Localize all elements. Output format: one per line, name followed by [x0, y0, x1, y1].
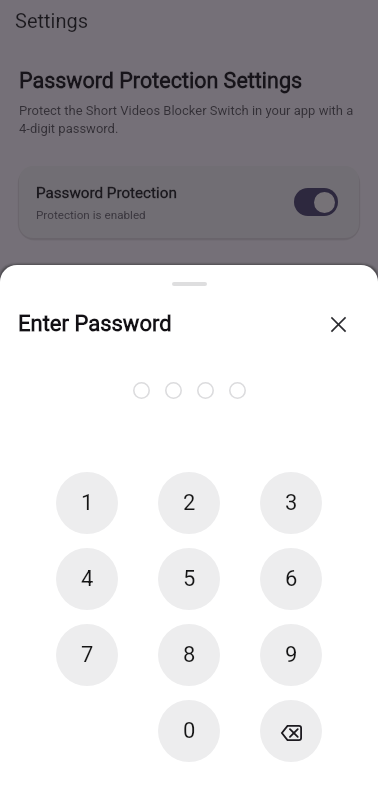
button[interactable]: 0: [158, 700, 220, 762]
staticText: 3: [285, 490, 298, 516]
button[interactable]: 4: [56, 548, 118, 610]
button[interactable]: 2: [158, 472, 220, 534]
staticText: Protect the Short Videos Blocker Switch …: [19, 103, 360, 136]
button[interactable]: Password Protection: [19, 166, 359, 238]
button[interactable]: 8: [158, 624, 220, 686]
staticText: 5: [183, 566, 196, 592]
button[interactable]: Password protection toggle: [294, 188, 338, 216]
staticText: 8: [183, 642, 196, 668]
button[interactable]: 6: [260, 548, 322, 610]
staticText: Enter Password: [18, 311, 325, 337]
button[interactable]: 3: [260, 472, 322, 534]
staticText: 0: [183, 718, 196, 744]
button[interactable]: 7: [56, 624, 118, 686]
staticText: Password Protection: [36, 184, 177, 202]
staticText: 7: [81, 642, 94, 668]
staticText: Settings: [15, 9, 89, 32]
button[interactable]: 9: [260, 624, 322, 686]
staticText: 4: [81, 566, 94, 592]
staticText: 2: [183, 490, 196, 516]
button[interactable]: Backspace: [260, 700, 322, 762]
staticText: 1: [81, 490, 94, 516]
staticText: 6: [285, 566, 298, 592]
button[interactable]: 5: [158, 548, 220, 610]
button[interactable]: 1: [56, 472, 118, 534]
staticText: Protection is enabled: [36, 208, 146, 222]
button[interactable]: Close: [325, 311, 351, 337]
staticText: Password Protection Settings: [19, 68, 303, 93]
staticText: 9: [285, 642, 298, 668]
